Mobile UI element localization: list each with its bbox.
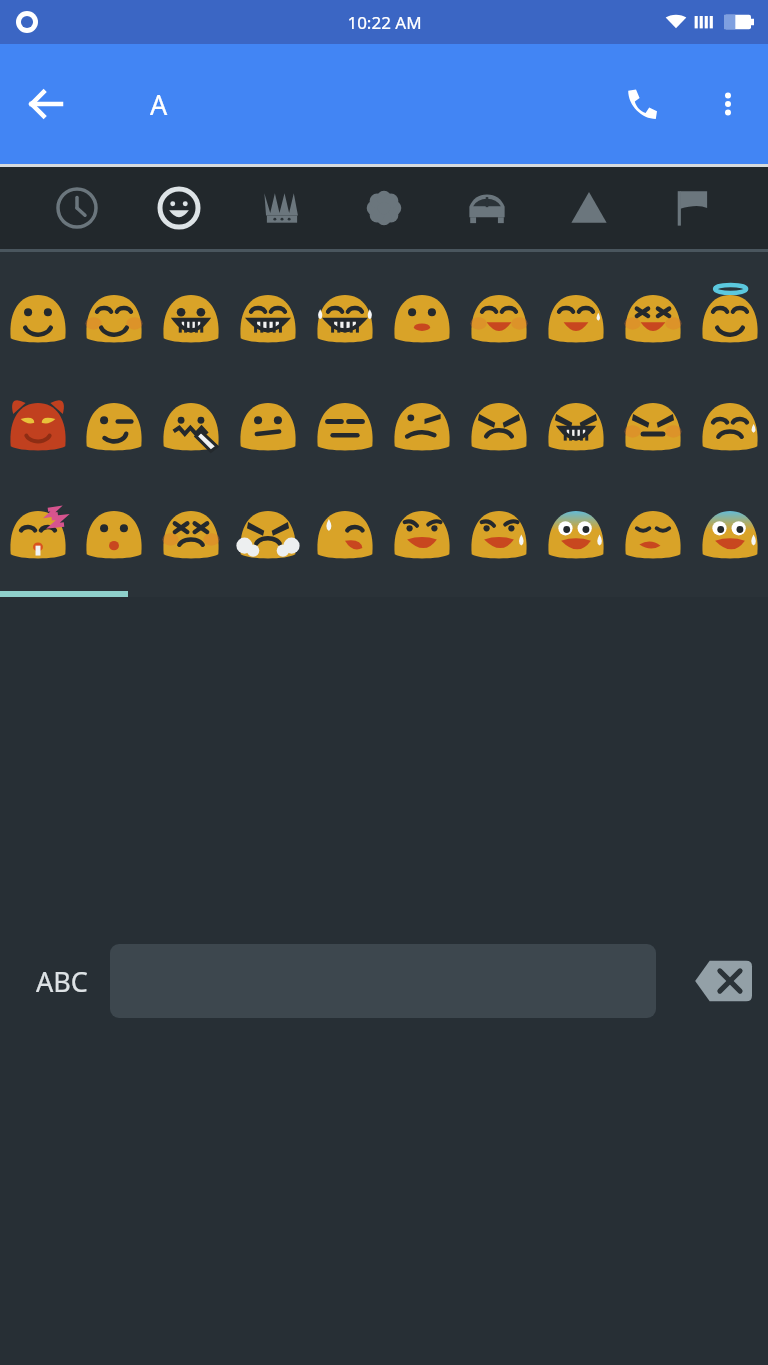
button[interactable]: Emoji 2: [152, 266, 229, 366]
button[interactable]: Emoji 5: [383, 266, 460, 366]
button[interactable]: Emoji 21: [76, 482, 152, 582]
staticText: ABC: [36, 963, 88, 1000]
button[interactable]: Smileys: [143, 172, 215, 244]
button[interactable]: Emoji 22: [152, 482, 229, 582]
button[interactable]: Emoji 11: [76, 374, 152, 474]
button[interactable]: Emoji 24: [306, 482, 383, 582]
button[interactable]: Emoji 23: [229, 482, 306, 582]
button[interactable]: Back: [22, 80, 70, 128]
button[interactable]: Emoji 20: [0, 482, 76, 582]
staticText: A: [150, 86, 168, 123]
button[interactable]: Emoji 28: [614, 482, 691, 582]
button[interactable]: Recent: [41, 172, 113, 244]
button[interactable]: Emoji 19: [691, 374, 768, 474]
button[interactable]: Emoji 1: [76, 266, 152, 366]
button[interactable]: Emoji 10: [0, 374, 76, 474]
button[interactable]: Emoji 9: [691, 266, 768, 366]
button[interactable]: Emoji 4: [306, 266, 383, 366]
button[interactable]: Emoji 25: [383, 482, 460, 582]
button[interactable]: People: [246, 172, 318, 244]
button[interactable]: Emoji 17: [537, 374, 614, 474]
button[interactable]: Objects: [553, 172, 625, 244]
button[interactable]: Emoji 7: [537, 266, 614, 366]
button[interactable]: Emoji 15: [383, 374, 460, 474]
button[interactable]: Emoji 13: [229, 374, 306, 474]
button[interactable]: Emoji 16: [460, 374, 537, 474]
button[interactable]: Delete: [692, 946, 754, 1016]
button[interactable]: Emoji 12: [152, 374, 229, 474]
button[interactable]: Emoji 29: [691, 482, 768, 582]
button[interactable]: Emoji 6: [460, 266, 537, 366]
button[interactable]: Emoji 18: [614, 374, 691, 474]
button[interactable]: Emoji 27: [537, 482, 614, 582]
button[interactable]: Flags: [656, 172, 728, 244]
button[interactable]: Emoji 0: [0, 266, 76, 366]
button[interactable]: Emoji 8: [614, 266, 691, 366]
button[interactable]: ABC: [14, 944, 110, 1018]
staticText: 10:22 AM: [347, 11, 422, 34]
button[interactable]: Emoji 3: [229, 266, 306, 366]
button[interactable]: More options: [702, 78, 754, 130]
button[interactable]: Call: [616, 78, 668, 130]
button[interactable]: Nature: [348, 172, 420, 244]
button[interactable]: Emoji 26: [460, 482, 537, 582]
button[interactable]: Travel: [451, 172, 523, 244]
button[interactable]: Emoji 14: [306, 374, 383, 474]
